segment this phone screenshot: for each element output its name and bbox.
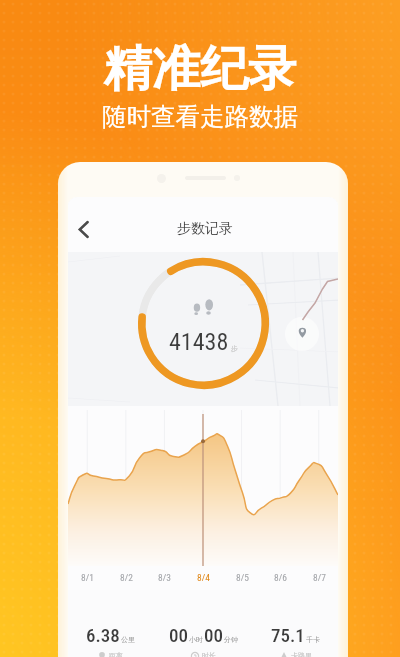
staticText: 步 bbox=[231, 344, 238, 353]
staticText: 8/7 bbox=[313, 572, 326, 583]
staticText: 随时查看走路数据 bbox=[102, 101, 298, 132]
staticText: 75.1 bbox=[271, 624, 305, 646]
staticText: 00 bbox=[204, 624, 223, 646]
staticText: 8/4 bbox=[197, 572, 210, 583]
staticText: 公里 bbox=[121, 635, 135, 644]
staticText: 卡路里 bbox=[291, 651, 312, 657]
staticText: 精准纪录 bbox=[104, 39, 296, 99]
staticText: 8/3 bbox=[158, 572, 171, 583]
staticText: 步数记录 bbox=[177, 220, 233, 238]
staticText: 时长 bbox=[202, 651, 216, 657]
staticText: 00 bbox=[169, 624, 188, 646]
staticText: 距离 bbox=[109, 651, 123, 657]
staticText: 6.38 bbox=[86, 624, 120, 646]
staticText: 8/6 bbox=[274, 572, 287, 583]
staticText: 8/2 bbox=[120, 572, 133, 583]
button[interactable]: Back bbox=[72, 218, 94, 240]
staticText: 41438 bbox=[169, 328, 229, 356]
staticText: 千卡 bbox=[306, 635, 320, 644]
staticText: 分钟 bbox=[224, 635, 238, 644]
staticText: 8/1 bbox=[81, 572, 94, 583]
staticText: 小时 bbox=[189, 635, 203, 644]
staticText: 8/5 bbox=[236, 572, 249, 583]
